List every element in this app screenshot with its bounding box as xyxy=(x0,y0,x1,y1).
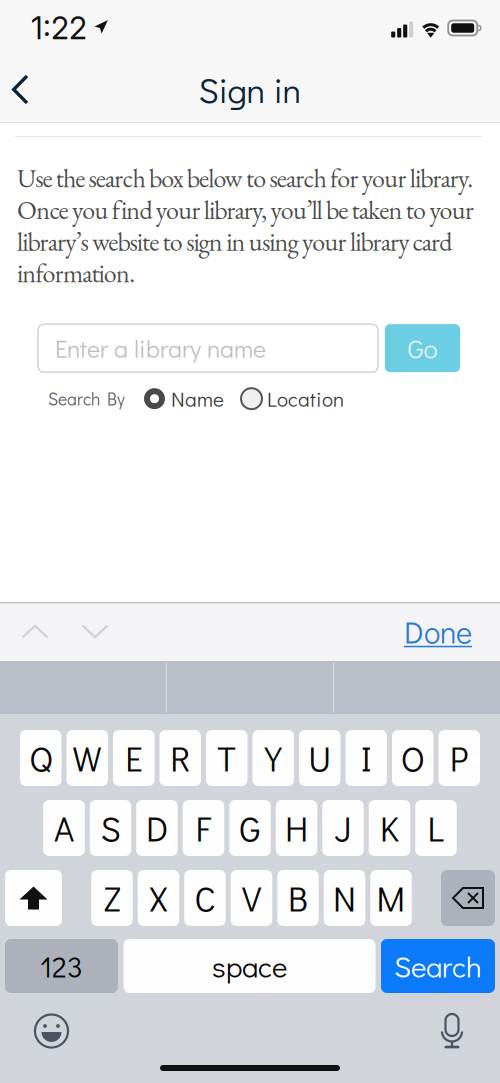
staticText: C xyxy=(194,875,215,921)
button[interactable]: G xyxy=(229,800,271,856)
staticText: Done xyxy=(404,611,472,652)
staticText: W xyxy=(72,735,102,781)
staticText: S xyxy=(100,805,120,851)
staticText: Search By xyxy=(48,387,125,410)
staticText: space xyxy=(212,947,287,985)
staticText: G xyxy=(239,805,260,851)
staticText: E xyxy=(125,735,142,781)
staticText: Location xyxy=(267,385,344,412)
button[interactable]: Back xyxy=(0,64,43,115)
button[interactable]: Search xyxy=(381,939,495,993)
button[interactable]: Done xyxy=(400,603,476,660)
button[interactable]: R xyxy=(159,730,201,786)
button[interactable]: A xyxy=(43,800,85,856)
staticText: D xyxy=(146,805,168,851)
staticText: 123 xyxy=(40,947,83,985)
button[interactable]: C xyxy=(184,870,226,926)
button[interactable]: Next field xyxy=(72,611,118,652)
staticText: T xyxy=(217,735,236,781)
button[interactable]: F xyxy=(183,800,224,856)
button[interactable]: S xyxy=(90,800,131,856)
staticText: O xyxy=(401,735,425,781)
staticText: X xyxy=(149,875,167,921)
button[interactable]: M xyxy=(370,870,412,926)
button[interactable]: W xyxy=(66,730,108,786)
button[interactable]: T xyxy=(206,730,247,786)
button[interactable]: B xyxy=(277,870,319,926)
staticText: U xyxy=(308,735,331,781)
staticText: V xyxy=(242,875,261,921)
staticText: Use the search box below to search for y… xyxy=(17,161,474,290)
button[interactable]: U xyxy=(299,730,340,786)
button[interactable]: N xyxy=(324,870,365,926)
staticText: L xyxy=(427,805,444,851)
button[interactable]: Location xyxy=(241,381,344,416)
button[interactable]: O xyxy=(392,730,433,786)
button[interactable]: I xyxy=(345,730,387,786)
button[interactable]: E xyxy=(113,730,154,786)
staticText: Sign in xyxy=(198,67,301,112)
staticText: H xyxy=(285,805,308,851)
button[interactable]: Go xyxy=(385,324,460,372)
staticText: Y xyxy=(265,735,282,781)
staticText: Name xyxy=(171,385,224,412)
staticText: M xyxy=(376,875,405,921)
button[interactable]: Q xyxy=(20,730,61,786)
staticText: Enter a library name xyxy=(55,332,266,364)
staticText: Search xyxy=(394,947,482,985)
staticText: F xyxy=(195,805,211,851)
button[interactable]: Previous field xyxy=(12,611,58,652)
staticText: Go xyxy=(407,331,437,366)
button[interactable]: K xyxy=(369,800,410,856)
staticText: A xyxy=(54,805,74,851)
button[interactable]: Y xyxy=(252,730,294,786)
button[interactable]: Emoji keyboard xyxy=(24,1003,79,1058)
button[interactable]: Dictation xyxy=(428,1001,476,1061)
staticText: Z xyxy=(103,875,120,921)
button[interactable]: Name xyxy=(144,381,224,416)
button[interactable]: Shift xyxy=(5,870,62,926)
staticText: 1:22 xyxy=(31,9,87,46)
staticText: K xyxy=(380,805,399,851)
button[interactable]: L xyxy=(415,800,457,856)
button[interactable]: H xyxy=(276,800,317,856)
staticText: I xyxy=(361,735,372,781)
staticText: Q xyxy=(29,735,52,781)
button[interactable]: space xyxy=(123,939,375,993)
staticText: N xyxy=(333,875,356,921)
button[interactable]: Z xyxy=(91,870,133,926)
button[interactable]: D xyxy=(136,800,178,856)
button[interactable]: V xyxy=(231,870,272,926)
button[interactable]: 123 xyxy=(5,939,118,993)
staticText: J xyxy=(334,805,351,851)
staticText: B xyxy=(288,875,308,921)
button[interactable]: P xyxy=(438,730,480,786)
staticText: P xyxy=(450,735,469,781)
button[interactable]: J xyxy=(322,800,364,856)
button[interactable]: Delete xyxy=(441,870,495,926)
staticText: R xyxy=(170,735,190,781)
button[interactable]: X xyxy=(138,870,179,926)
